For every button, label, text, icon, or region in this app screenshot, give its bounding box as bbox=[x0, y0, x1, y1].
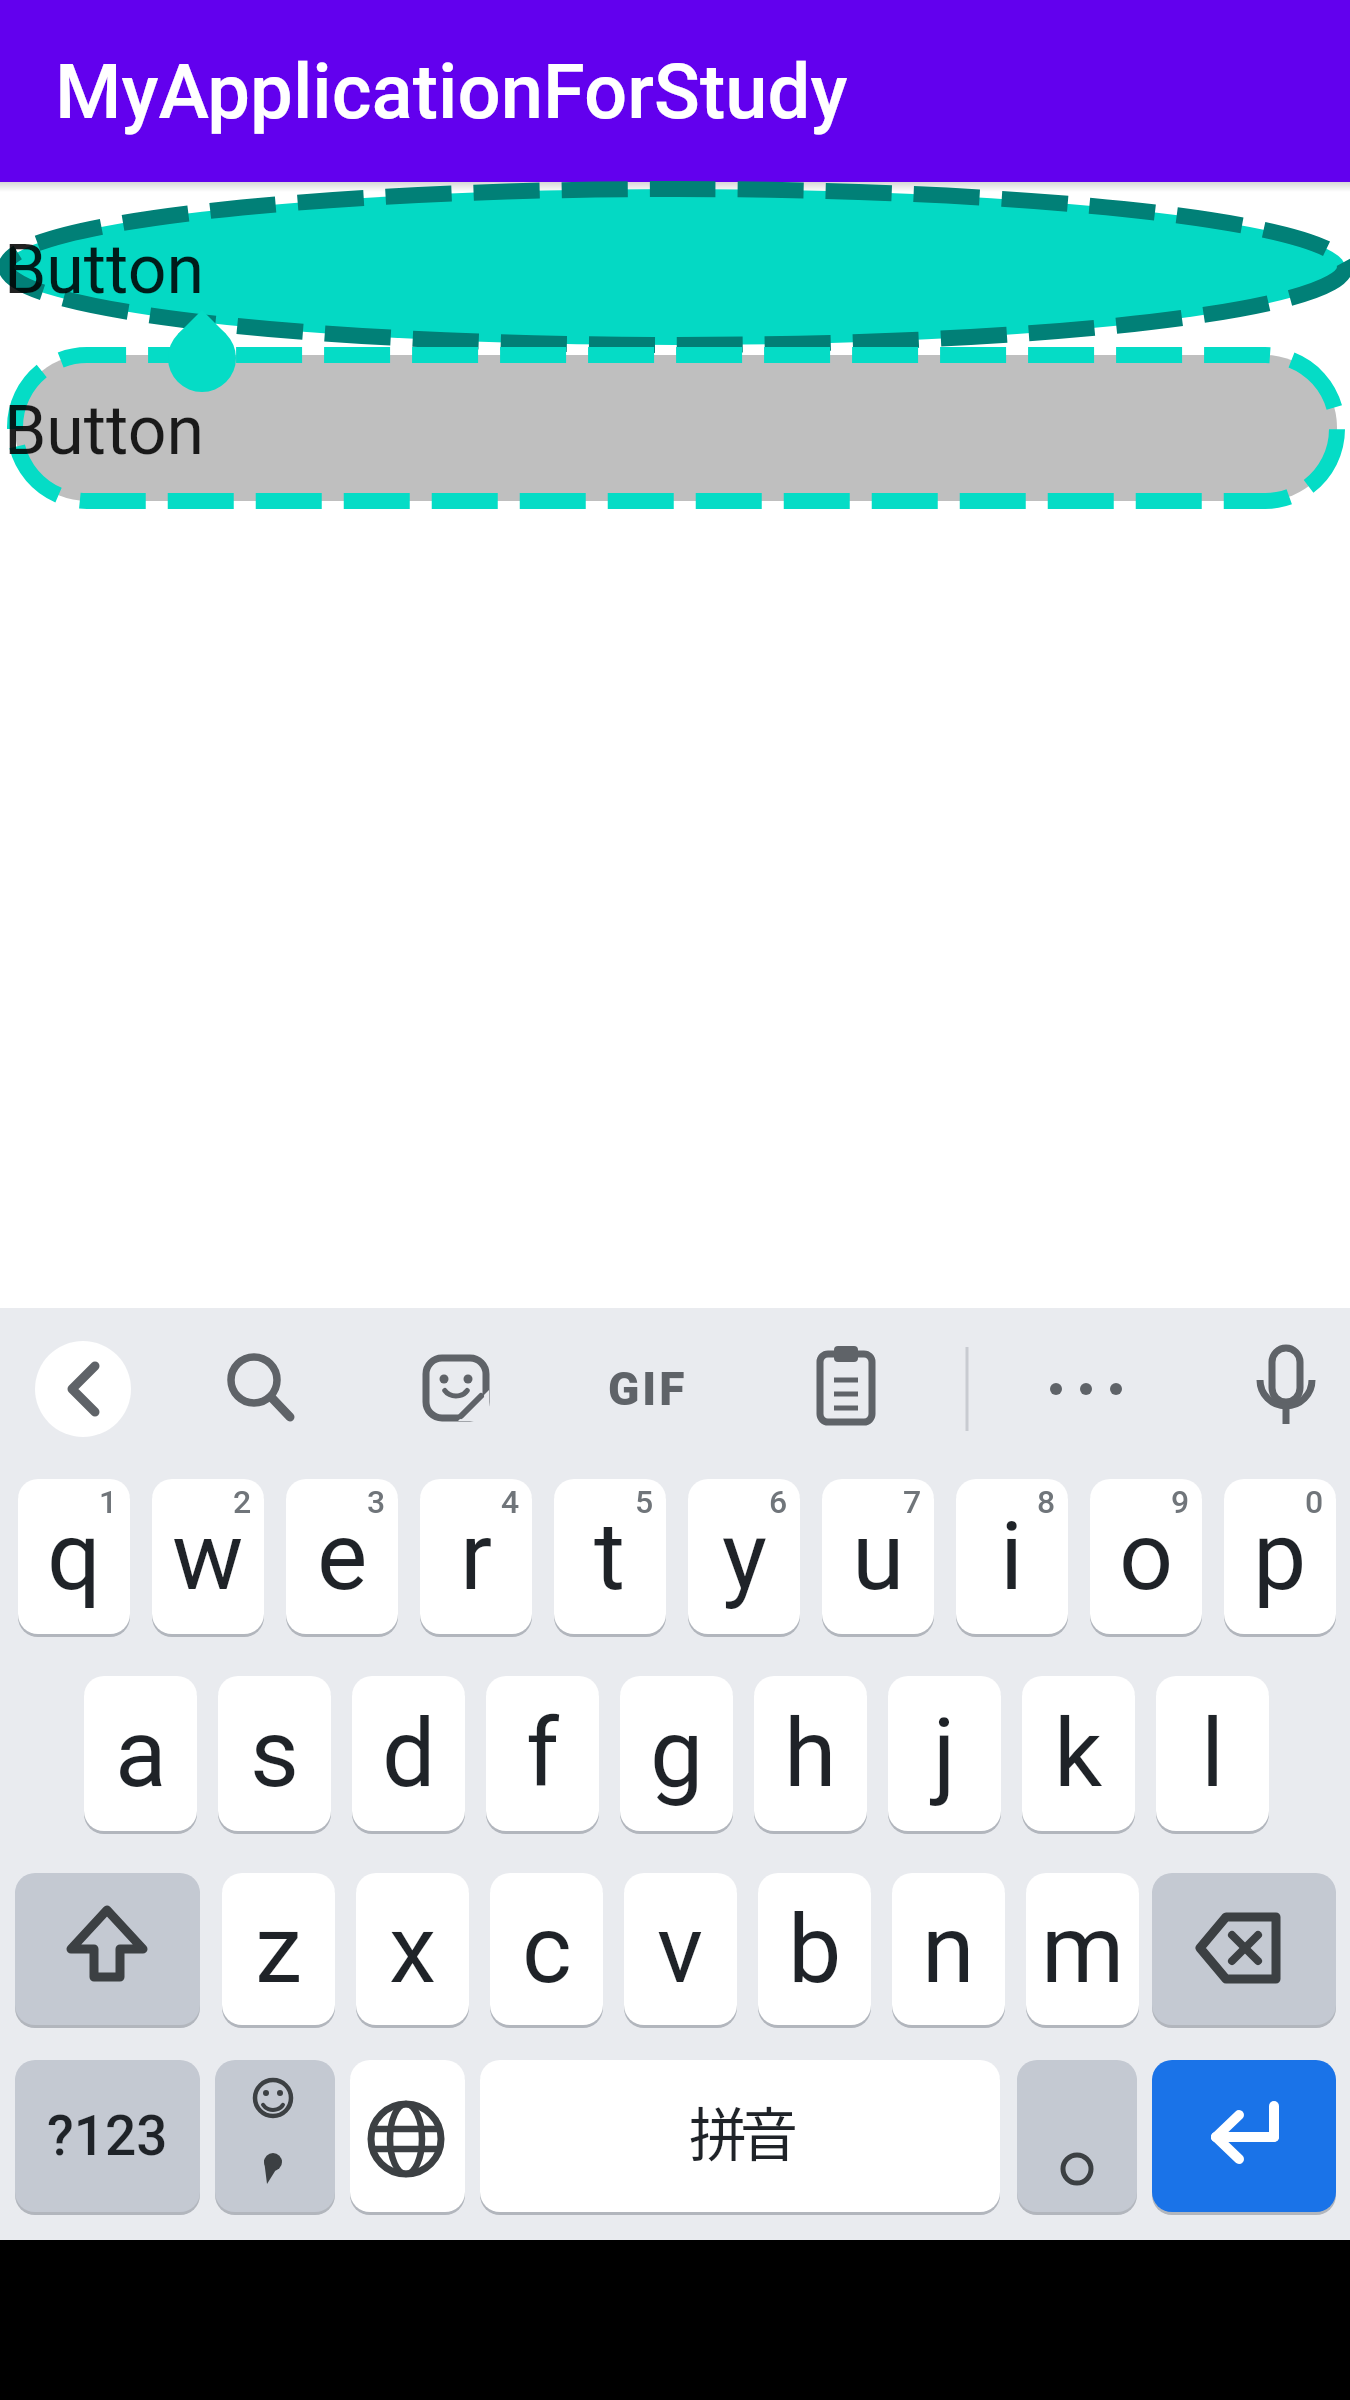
button[interactable] bbox=[1152, 1873, 1336, 2025]
button[interactable]: x bbox=[356, 1873, 469, 2025]
button[interactable] bbox=[6, 189, 1344, 345]
button[interactable]: g bbox=[620, 1676, 733, 1831]
button[interactable]: l bbox=[1156, 1676, 1269, 1831]
staticText: x bbox=[389, 1894, 437, 2005]
button[interactable]: GIF bbox=[560, 1345, 736, 1433]
button[interactable] bbox=[15, 355, 1337, 501]
staticText: y bbox=[722, 1501, 767, 1612]
button[interactable] bbox=[1038, 1341, 1134, 1437]
staticText: 0 bbox=[1305, 1483, 1324, 1521]
staticText: z bbox=[255, 1894, 303, 2005]
staticText: g bbox=[650, 1698, 704, 1809]
button[interactable]: u bbox=[822, 1479, 934, 1634]
staticText: c bbox=[522, 1894, 572, 2005]
button[interactable]: r bbox=[420, 1479, 532, 1634]
staticText: 3 bbox=[367, 1483, 386, 1521]
staticText: j bbox=[933, 1698, 956, 1809]
staticText: e bbox=[317, 1501, 368, 1612]
staticText: p bbox=[1253, 1501, 1307, 1612]
staticText: w bbox=[172, 1501, 244, 1612]
staticText: i bbox=[1000, 1501, 1024, 1612]
staticText: ?123 bbox=[47, 2104, 168, 2168]
button[interactable]: c bbox=[490, 1873, 603, 2025]
button[interactable] bbox=[1017, 2060, 1137, 2212]
button[interactable] bbox=[208, 1341, 304, 1437]
button[interactable] bbox=[1152, 2060, 1336, 2212]
button[interactable] bbox=[1237, 1341, 1333, 1437]
button[interactable]: ?123 bbox=[15, 2060, 200, 2212]
button[interactable]: n bbox=[892, 1873, 1005, 2025]
staticText: 5 bbox=[635, 1483, 654, 1521]
button[interactable]: q bbox=[18, 1479, 130, 1634]
staticText: GIF bbox=[608, 1362, 688, 1416]
staticText: d bbox=[382, 1698, 436, 1809]
staticText: MyApplicationForStudy bbox=[55, 47, 848, 136]
staticText: f bbox=[526, 1698, 560, 1809]
button[interactable] bbox=[35, 1341, 131, 1437]
staticText: n bbox=[922, 1894, 975, 2005]
button[interactable]: v bbox=[624, 1873, 737, 2025]
button[interactable]: e bbox=[286, 1479, 398, 1634]
button[interactable]: h bbox=[754, 1676, 867, 1831]
staticText: k bbox=[1054, 1698, 1103, 1809]
staticText: s bbox=[250, 1698, 300, 1809]
staticText: 9 bbox=[1171, 1483, 1190, 1521]
button[interactable]: y bbox=[688, 1479, 800, 1634]
staticText: 8 bbox=[1037, 1483, 1056, 1521]
button[interactable]: d bbox=[352, 1676, 465, 1831]
staticText: h bbox=[784, 1698, 837, 1809]
button[interactable]: m bbox=[1026, 1873, 1139, 2025]
staticText: Button bbox=[4, 391, 205, 471]
button[interactable] bbox=[15, 1873, 200, 2025]
staticText: 4 bbox=[501, 1483, 520, 1521]
button[interactable] bbox=[407, 1341, 503, 1437]
staticText: a bbox=[115, 1698, 167, 1809]
button[interactable]: t bbox=[554, 1479, 666, 1634]
button[interactable] bbox=[350, 2060, 465, 2212]
staticText: u bbox=[852, 1501, 905, 1612]
staticText: q bbox=[47, 1501, 101, 1612]
button[interactable]: f bbox=[486, 1676, 599, 1831]
button[interactable] bbox=[215, 2060, 335, 2212]
button[interactable]: b bbox=[758, 1873, 871, 2025]
button[interactable]: 拼音 bbox=[480, 2060, 1000, 2212]
button[interactable]: z bbox=[222, 1873, 335, 2025]
button[interactable]: s bbox=[218, 1676, 331, 1831]
staticText: b bbox=[788, 1894, 842, 2005]
button[interactable] bbox=[797, 1341, 893, 1437]
staticText: o bbox=[1119, 1501, 1174, 1612]
staticText: 拼音 bbox=[689, 2089, 792, 2173]
staticText: 2 bbox=[233, 1483, 252, 1521]
button[interactable]: a bbox=[84, 1676, 197, 1831]
button[interactable]: o bbox=[1090, 1479, 1202, 1634]
staticText: 6 bbox=[769, 1483, 788, 1521]
staticText: r bbox=[460, 1501, 493, 1612]
button[interactable]: p bbox=[1224, 1479, 1336, 1634]
staticText: l bbox=[1201, 1698, 1225, 1809]
staticText: t bbox=[594, 1501, 626, 1612]
button[interactable]: j bbox=[888, 1676, 1001, 1831]
button[interactable]: k bbox=[1022, 1676, 1135, 1831]
staticText: 7 bbox=[903, 1483, 922, 1521]
staticText: Button bbox=[4, 230, 205, 310]
button[interactable]: i bbox=[956, 1479, 1068, 1634]
button[interactable]: w bbox=[152, 1479, 264, 1634]
staticText: 1 bbox=[99, 1483, 118, 1521]
staticText: m bbox=[1041, 1894, 1125, 2005]
staticText: v bbox=[657, 1894, 704, 2005]
